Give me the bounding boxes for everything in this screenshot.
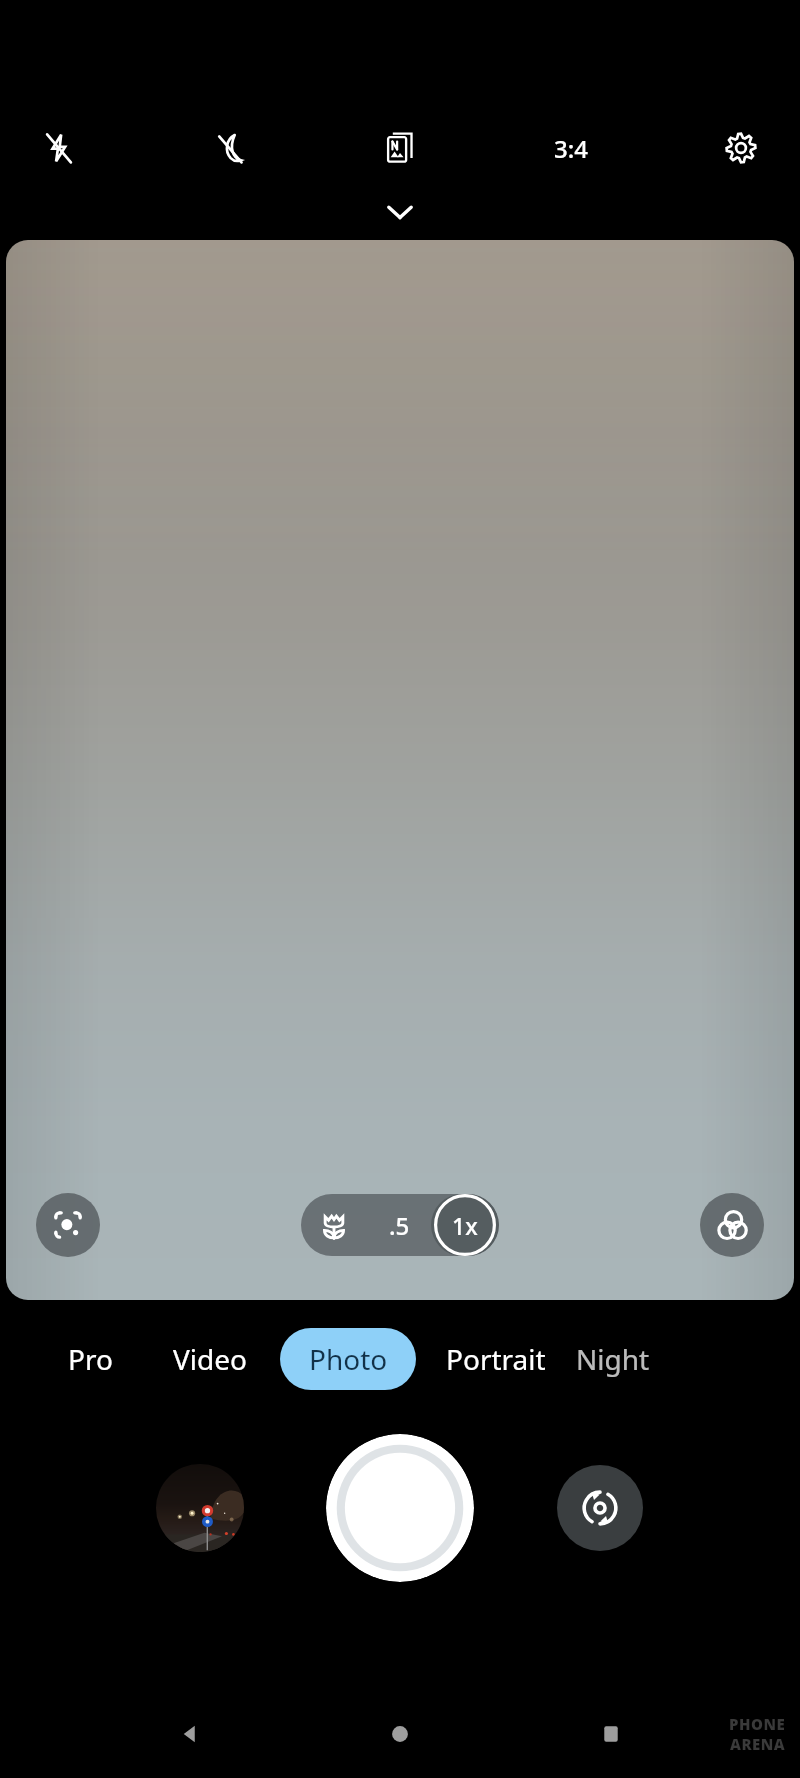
button[interactable]: Aspect ratio 3:4 <box>540 117 602 179</box>
button[interactable]: Video <box>140 1326 280 1392</box>
button[interactable]: Settings <box>710 117 772 179</box>
button[interactable]: Filters <box>700 1193 764 1257</box>
button[interactable]: Switch camera <box>557 1465 643 1551</box>
staticText: 1x <box>452 1210 478 1241</box>
button[interactable]: Home <box>368 1702 432 1766</box>
button[interactable]: Google Lens <box>36 1193 100 1257</box>
button[interactable]: Night mode off <box>199 117 261 179</box>
button[interactable]: More options <box>372 184 428 240</box>
button[interactable]: .5 <box>367 1194 431 1256</box>
button[interactable]: Photo <box>280 1328 416 1390</box>
button[interactable]: Back <box>157 1702 221 1766</box>
button[interactable]: Last photo <box>156 1464 244 1552</box>
staticText: Pro <box>68 1340 113 1378</box>
button[interactable]: Pro <box>40 1326 140 1392</box>
button[interactable]: Take photo <box>326 1434 474 1582</box>
staticText: Video <box>173 1340 247 1378</box>
button[interactable]: 1x <box>431 1194 499 1256</box>
button[interactable]: Portrait <box>416 1326 576 1392</box>
staticText: Portrait <box>446 1340 546 1378</box>
button[interactable]: Recent apps <box>579 1702 643 1766</box>
button[interactable]: Flash off <box>28 117 90 179</box>
staticText: .5 <box>389 1209 410 1242</box>
button[interactable]: Macro <box>301 1194 367 1256</box>
staticText: ARENA <box>730 1734 786 1754</box>
staticText: Photo <box>309 1340 388 1378</box>
button[interactable]: Night <box>576 1326 706 1392</box>
staticText: 3:4 <box>554 132 588 165</box>
staticText: PHONE <box>729 1714 786 1734</box>
staticText: Night <box>576 1340 650 1378</box>
button[interactable]: Photo format <box>369 117 431 179</box>
